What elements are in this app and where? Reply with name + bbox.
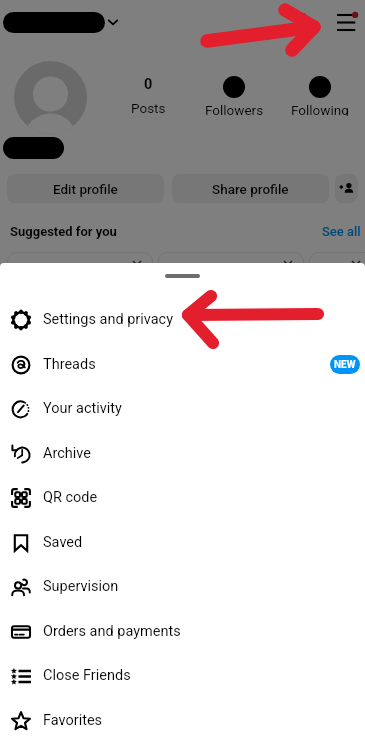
staticText: Settings and privacy [43, 311, 174, 328]
staticText: 0 [144, 76, 153, 93]
button[interactable]: Your activity [0, 386, 365, 431]
button[interactable] [309, 252, 365, 442]
button[interactable] [14, 61, 87, 134]
button[interactable] [7, 252, 153, 442]
button[interactable]: Discover people [335, 174, 358, 203]
staticText: NEW [334, 359, 356, 371]
button[interactable]: Archive [0, 431, 365, 476]
staticText: Saved [43, 534, 83, 551]
button[interactable]: Add [288, 10, 310, 32]
button[interactable]: 0 [108, 76, 188, 116]
button[interactable]: Orders and payments [0, 609, 365, 654]
staticText: Edit profile [53, 181, 118, 197]
staticText: Suggested for you [10, 224, 117, 239]
staticText: Supervision [43, 578, 119, 595]
button[interactable]: Favorites [0, 698, 365, 742]
button[interactable]: Settings and privacy [0, 297, 365, 342]
button[interactable]: Saved [0, 520, 365, 565]
button[interactable]: Close Friends [0, 653, 365, 698]
staticText: Favorites [43, 712, 103, 729]
other: Switch account [107, 16, 119, 28]
staticText: QR code [43, 489, 98, 506]
button[interactable]: Threads [0, 342, 365, 387]
button[interactable]: QR code [0, 475, 365, 520]
staticText: Threads [43, 356, 96, 373]
button[interactable] [158, 252, 304, 442]
staticText: Share profile [212, 181, 289, 197]
staticText: Orders and payments [43, 623, 181, 640]
staticText: Your activity [43, 400, 122, 417]
button[interactable]: See all [322, 224, 361, 239]
button[interactable]: Followers [194, 76, 274, 116]
button[interactable]: Menu [334, 10, 359, 35]
staticText: Followers [205, 102, 264, 116]
staticText: See all [322, 224, 361, 239]
staticText: Posts [131, 100, 166, 116]
button[interactable]: Supervision [0, 564, 365, 609]
staticText: Close Friends [43, 667, 131, 684]
button[interactable]: Share profile [172, 174, 329, 203]
button[interactable]: Edit profile [7, 174, 164, 203]
staticText: Archive [43, 445, 91, 462]
button[interactable]: Following [280, 76, 360, 116]
staticText: Following [291, 102, 349, 116]
